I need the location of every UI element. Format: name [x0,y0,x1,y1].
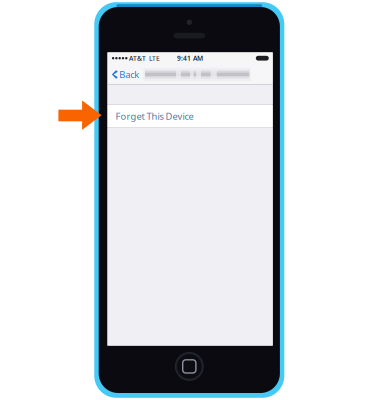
staticText: AT&T [129,54,146,63]
staticText: Forget This Device [115,110,193,122]
staticText: Back [119,68,139,81]
staticText: 9:41 AM [177,54,203,63]
staticText: LTE [149,54,160,63]
button[interactable]: Back [107,64,141,85]
button[interactable]: Forget This Device [107,105,273,127]
